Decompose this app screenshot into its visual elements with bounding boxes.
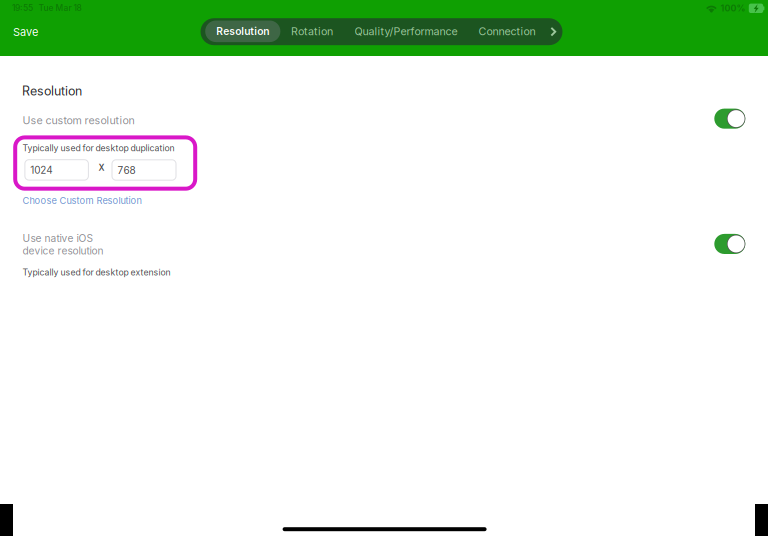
staticText: Connection [478,25,535,38]
staticText: Resolution [216,25,269,38]
button[interactable]: Rotation [280,20,344,42]
button[interactable]: 768 [112,160,176,180]
button[interactable]: Toggle [714,109,745,129]
button[interactable]: Quality/Performance [344,20,468,42]
staticText: Rotation [291,25,333,38]
staticText: 1024 [30,164,52,176]
staticText: Resolution [22,83,82,98]
button[interactable]: Choose Custom Resolution [23,195,142,206]
staticText: Tue Mar 18 [39,3,82,13]
button[interactable]: Toggle [714,234,745,254]
button[interactable]: Save [0,17,51,47]
staticText: Typically used for desktop extension [22,267,170,277]
staticText: device resolution [22,244,103,257]
staticText: Use native iOS [22,232,93,244]
button[interactable]: Connection [468,20,546,42]
staticText: Choose Custom Resolution [23,195,142,206]
button[interactable]: Resolution [205,20,280,42]
button[interactable]: More tabs [547,25,560,38]
staticText: Quality/Performance [354,25,457,38]
staticText: X [98,163,104,173]
staticText: Use custom resolution [22,114,134,127]
staticText: Save [13,25,38,39]
staticText: 100% [721,3,746,14]
staticText: Typically used for desktop duplication [22,143,174,153]
button[interactable]: 1024 [25,160,88,180]
staticText: 19:55 [12,3,33,13]
staticText: 768 [117,164,135,176]
